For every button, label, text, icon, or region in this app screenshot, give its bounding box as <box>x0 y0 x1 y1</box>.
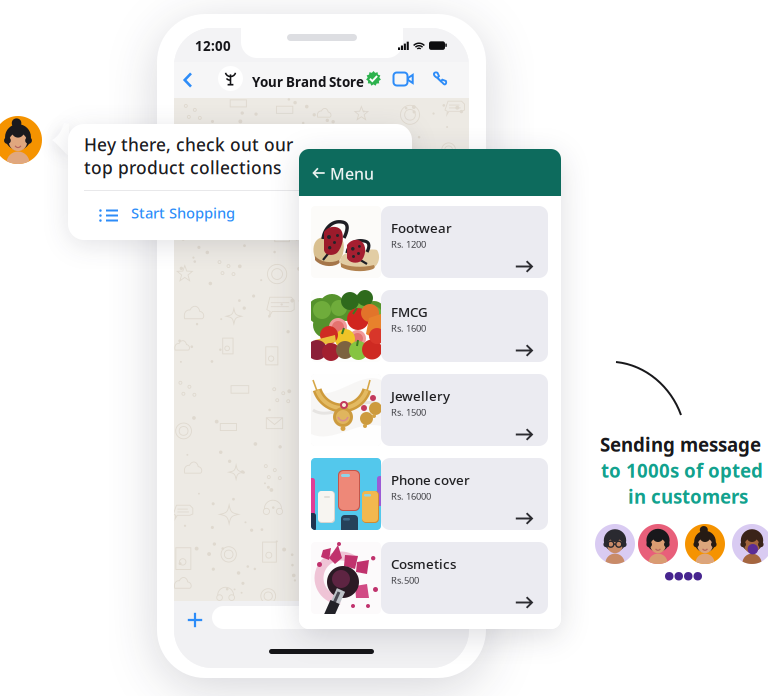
button[interactable]: Video call <box>392 66 416 92</box>
staticText: in customers <box>628 484 748 509</box>
staticText: FMCG <box>391 303 428 321</box>
button[interactable]: Cosmetics <box>311 542 548 614</box>
staticText: Rs.500 <box>391 574 419 586</box>
button[interactable]: Attach <box>183 608 207 632</box>
button[interactable]: Voice call <box>430 66 450 92</box>
button[interactable]: Back <box>177 65 199 95</box>
staticText: Rs. 1600 <box>391 322 426 334</box>
staticText: Phone cover <box>391 471 470 489</box>
staticText: Your Brand Store <box>252 73 364 91</box>
staticText: Cosmetics <box>391 555 456 573</box>
staticText: Rs. 1200 <box>391 238 426 250</box>
staticText: to 1000s of opted <box>601 458 763 483</box>
button[interactable]: Start Shopping <box>97 201 247 229</box>
staticText: Jewellery <box>391 387 450 405</box>
staticText: 12:00 <box>195 37 231 55</box>
staticText: Rs. 16000 <box>391 490 431 502</box>
button[interactable]: FMCG <box>311 290 548 362</box>
staticText: Footwear <box>391 219 452 237</box>
staticText: top product collections <box>84 156 281 179</box>
staticText: Rs. 1500 <box>391 406 426 418</box>
staticText: Sending message <box>600 432 761 457</box>
button[interactable]: Jewellery <box>311 374 548 446</box>
staticText: Menu <box>330 163 374 184</box>
button[interactable]: Phone cover <box>311 458 548 530</box>
button[interactable]: Footwear <box>311 206 548 278</box>
staticText: Hey there, check out our <box>84 133 293 156</box>
button[interactable]: Back <box>309 161 329 185</box>
staticText: Start Shopping <box>131 203 235 222</box>
